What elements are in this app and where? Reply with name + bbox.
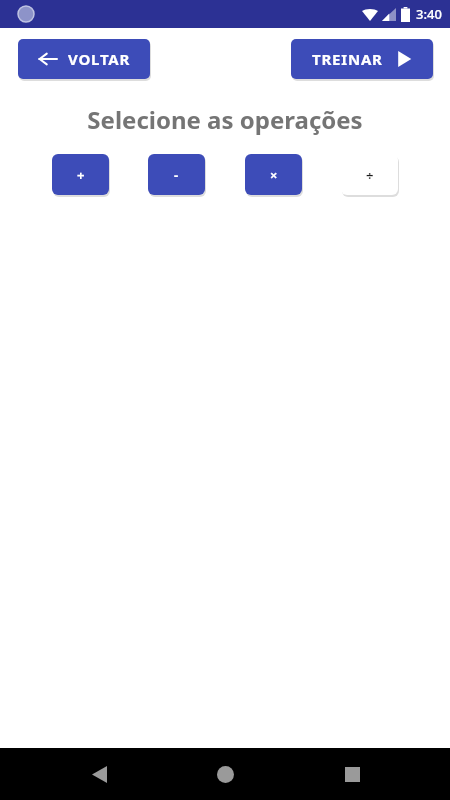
staticText: TREINAR — [312, 49, 383, 69]
button[interactable]: + — [52, 154, 109, 195]
button[interactable]: ÷ — [341, 154, 398, 195]
button[interactable]: Home — [197, 748, 253, 800]
staticText: Selecione as operações — [0, 103, 450, 136]
button[interactable]: VOLTAR — [18, 39, 150, 79]
button[interactable]: - — [148, 154, 205, 195]
staticText: ÷ — [366, 166, 374, 184]
button[interactable]: TREINAR — [291, 39, 433, 79]
staticText: 3:40 — [416, 5, 442, 23]
button[interactable]: Recent apps — [324, 748, 380, 800]
staticText: + — [77, 166, 85, 184]
staticText: VOLTAR — [68, 49, 131, 69]
staticText: × — [270, 166, 278, 184]
staticText: - — [174, 166, 179, 184]
button[interactable]: Back — [71, 748, 127, 800]
button[interactable]: × — [245, 154, 302, 195]
